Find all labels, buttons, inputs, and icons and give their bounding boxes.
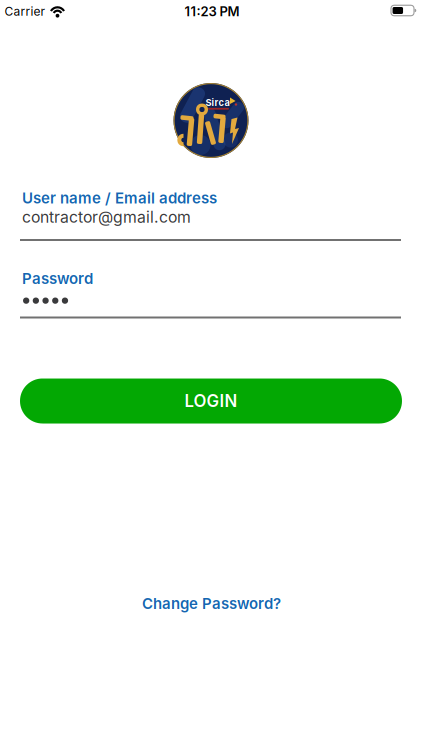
- staticText: Change Password?: [142, 594, 281, 613]
- button[interactable]: Password: [20, 270, 401, 320]
- button[interactable]: User name / Email address: [20, 187, 401, 241]
- staticText: LOGIN: [184, 391, 237, 411]
- button[interactable]: LOGIN: [20, 378, 402, 423]
- staticText: Carrier: [4, 4, 45, 19]
- staticText: 11:23 PM: [184, 4, 239, 19]
- staticText: contractor@gmail.com: [22, 207, 191, 226]
- staticText: Password: [22, 269, 93, 288]
- staticText: User name / Email address: [22, 189, 217, 207]
- staticText: Sirca: [205, 97, 229, 108]
- button[interactable]: Change Password?: [142, 594, 281, 613]
